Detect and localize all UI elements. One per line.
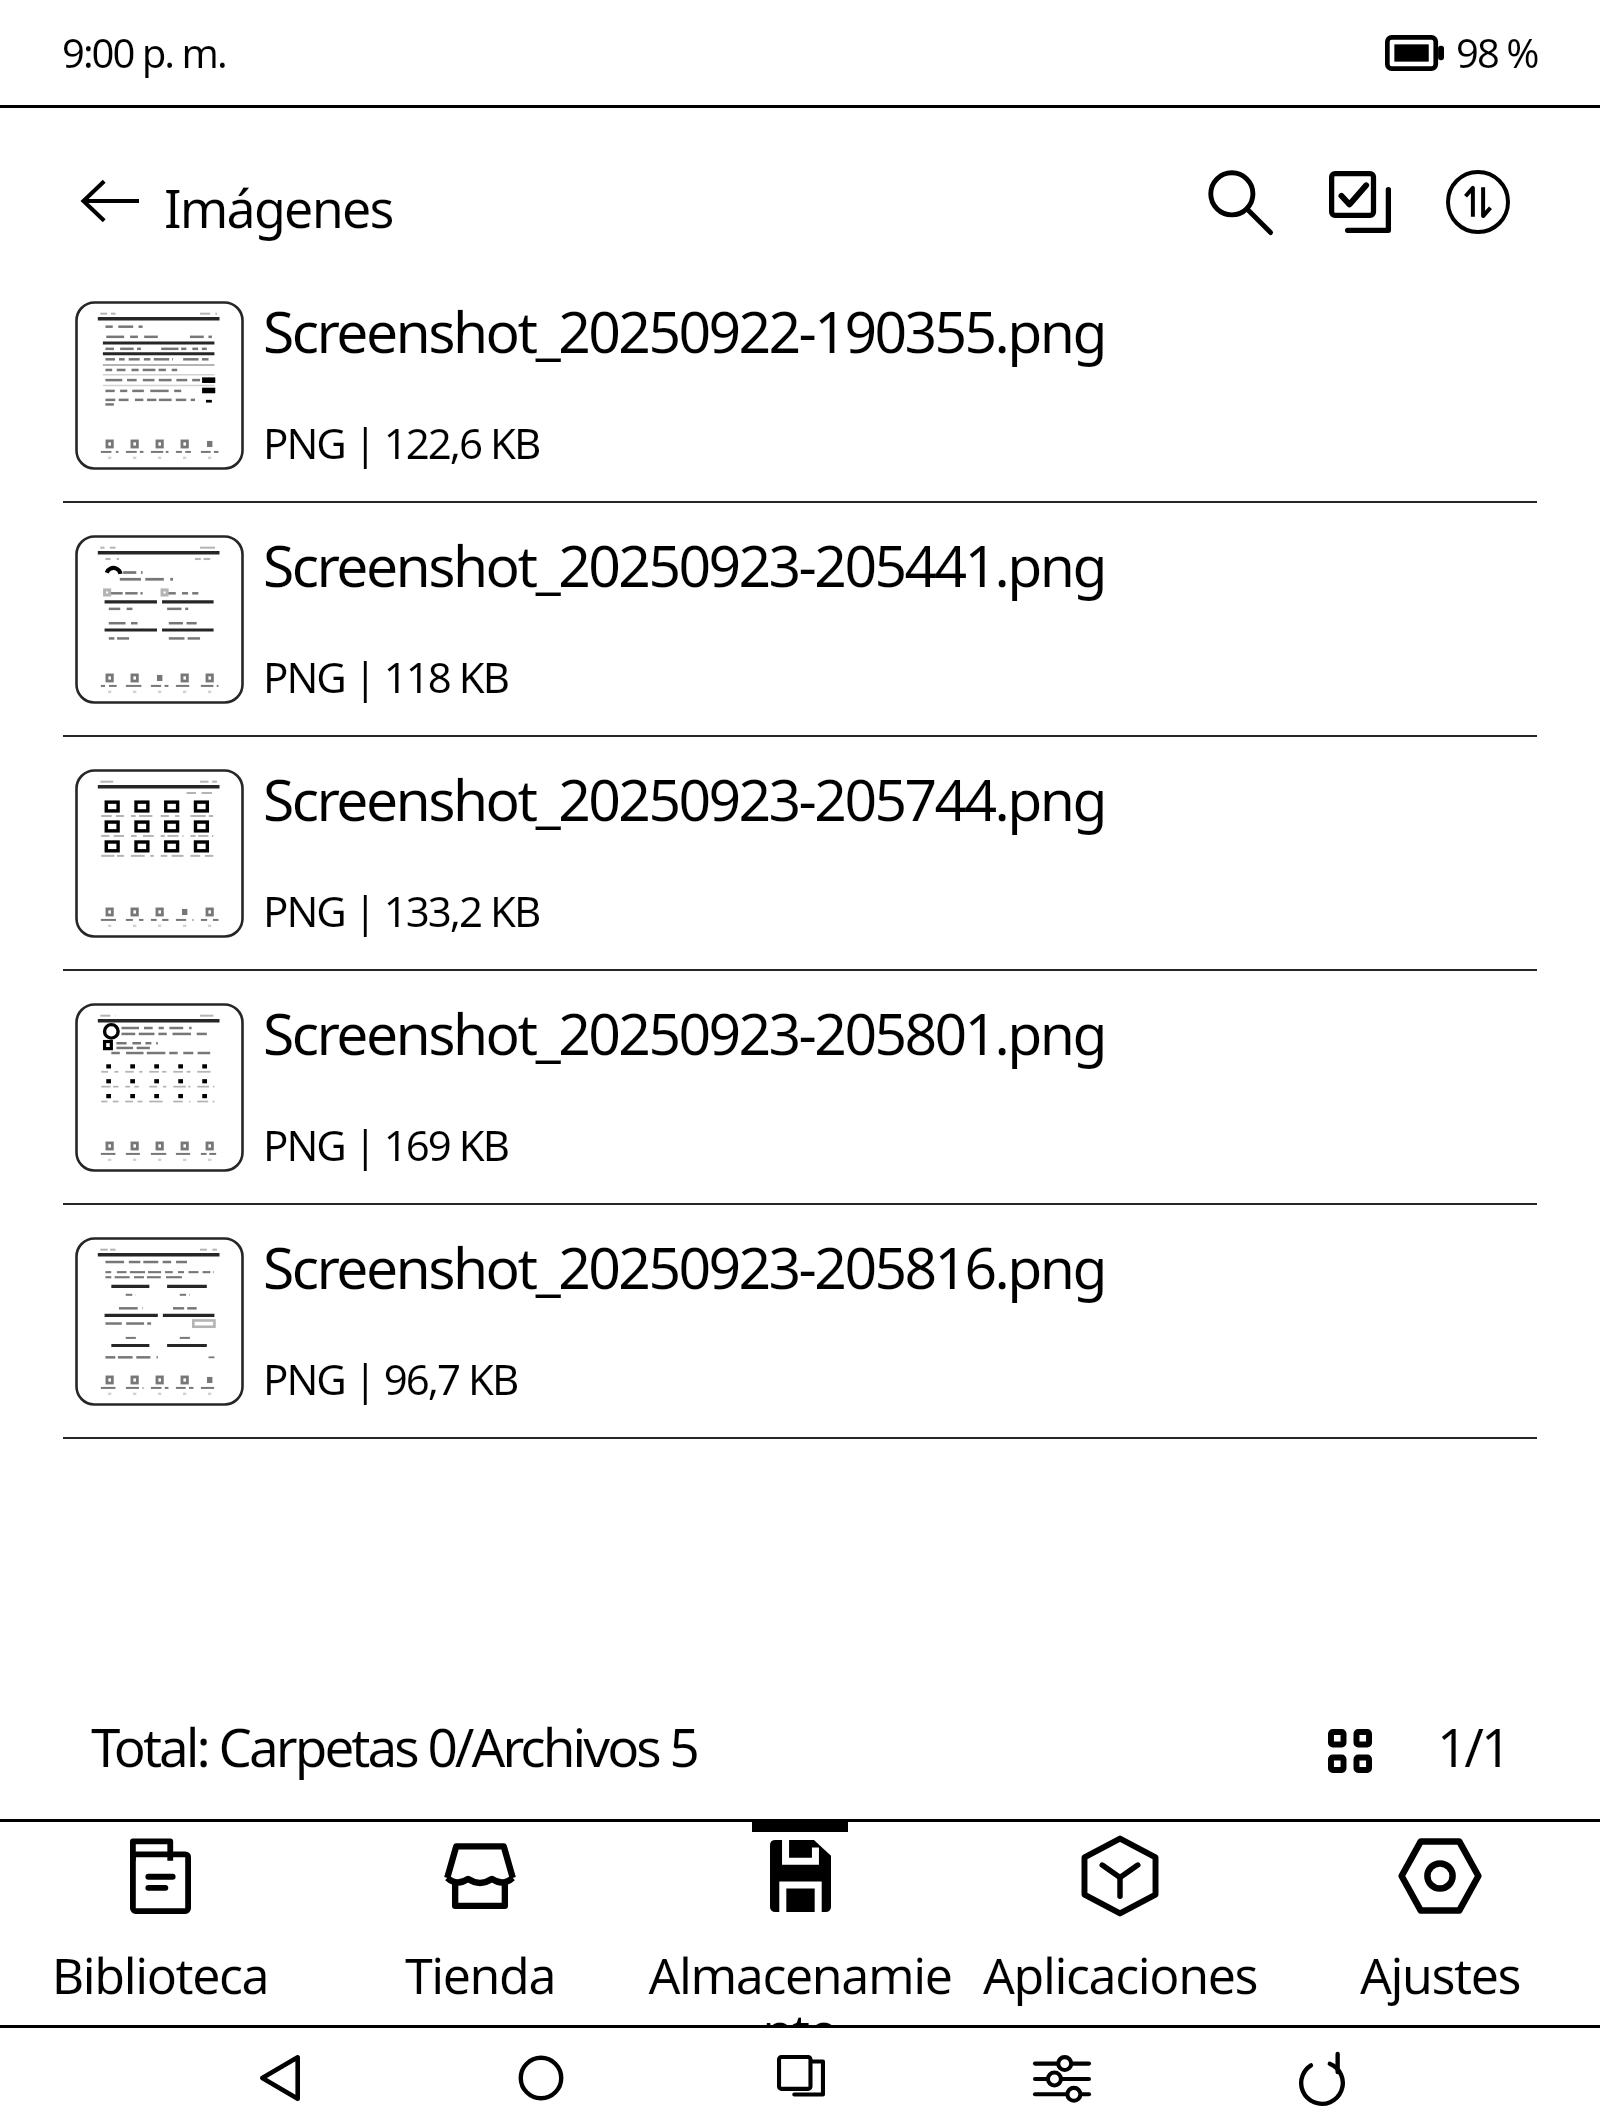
staticText: PNG | 96,7 KB (263, 1350, 518, 1407)
button[interactable]: Screenshot_20250923-205801.png (0, 971, 1600, 1205)
staticText: Screenshot_20250923-205744.png (263, 760, 1105, 838)
staticText: Screenshot_20250922-190355.png (263, 292, 1105, 370)
staticText: Biblioteca (4, 1941, 316, 2009)
staticText: PNG | 118 KB (263, 648, 508, 705)
button[interactable]: Recent apps (753, 2030, 849, 2126)
staticText: Aplicaciones (964, 1941, 1276, 2009)
staticText: Imágenes (164, 172, 393, 243)
staticText: 98 % (1456, 25, 1538, 79)
staticText: Total: Carpetas 0/Archivos 5 (91, 1710, 697, 1782)
staticText: Screenshot_20250923-205441.png (263, 526, 1105, 604)
button[interactable]: Almacenamiento (640, 1822, 960, 2025)
staticText: 1/1 (1437, 1710, 1509, 1782)
button[interactable]: Home (493, 2030, 589, 2126)
staticText: PNG | 169 KB (263, 1116, 508, 1173)
button[interactable]: Sort order (1430, 154, 1526, 250)
staticText: PNG | 122,6 KB (263, 414, 540, 471)
staticText: Screenshot_20250923-205801.png (263, 994, 1105, 1072)
button[interactable]: Refresh (1274, 2030, 1370, 2126)
button[interactable]: Select items (1312, 154, 1408, 250)
button[interactable]: Search (1192, 154, 1288, 250)
button[interactable]: Back (65, 156, 155, 246)
button[interactable]: Ajustes (1280, 1822, 1600, 2025)
staticText: PNG | 133,2 KB (263, 882, 540, 939)
button[interactable]: Grid view (1312, 1713, 1388, 1789)
staticText: Almacenamiento (644, 1941, 956, 2025)
staticText: Tienda (324, 1941, 636, 2009)
button[interactable]: Screenshot_20250923-205441.png (0, 503, 1600, 737)
button[interactable]: Display settings (1014, 2030, 1110, 2126)
button[interactable]: Aplicaciones (960, 1822, 1280, 2025)
button[interactable]: Screenshot_20250923-205744.png (0, 737, 1600, 971)
button[interactable]: Biblioteca (0, 1822, 320, 2025)
staticText: Screenshot_20250923-205816.png (263, 1228, 1105, 1306)
button[interactable]: Tienda (320, 1822, 640, 2025)
button[interactable]: Screenshot_20250922-190355.png (0, 269, 1600, 503)
button[interactable]: Back (232, 2030, 328, 2126)
button[interactable]: Screenshot_20250923-205816.png (0, 1205, 1600, 1439)
staticText: Ajustes (1284, 1941, 1596, 2009)
staticText: 9:00 p. m. (62, 25, 226, 79)
